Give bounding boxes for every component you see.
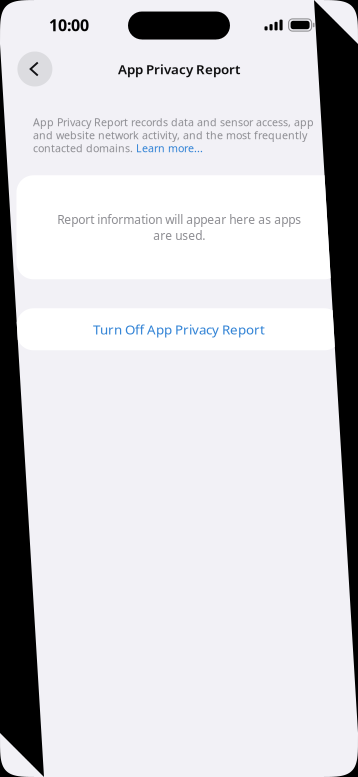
staticText: 10:00 bbox=[49, 14, 89, 36]
staticText: App Privacy Report bbox=[118, 60, 240, 78]
staticText: Report information will appear here as a… bbox=[57, 211, 301, 243]
button[interactable]: Turn Off App Privacy Report bbox=[16, 308, 341, 350]
staticText: Turn Off App Privacy Report bbox=[93, 320, 265, 338]
button[interactable]: Back bbox=[17, 51, 52, 86]
staticText: App Privacy Report records data and sens… bbox=[33, 115, 314, 155]
